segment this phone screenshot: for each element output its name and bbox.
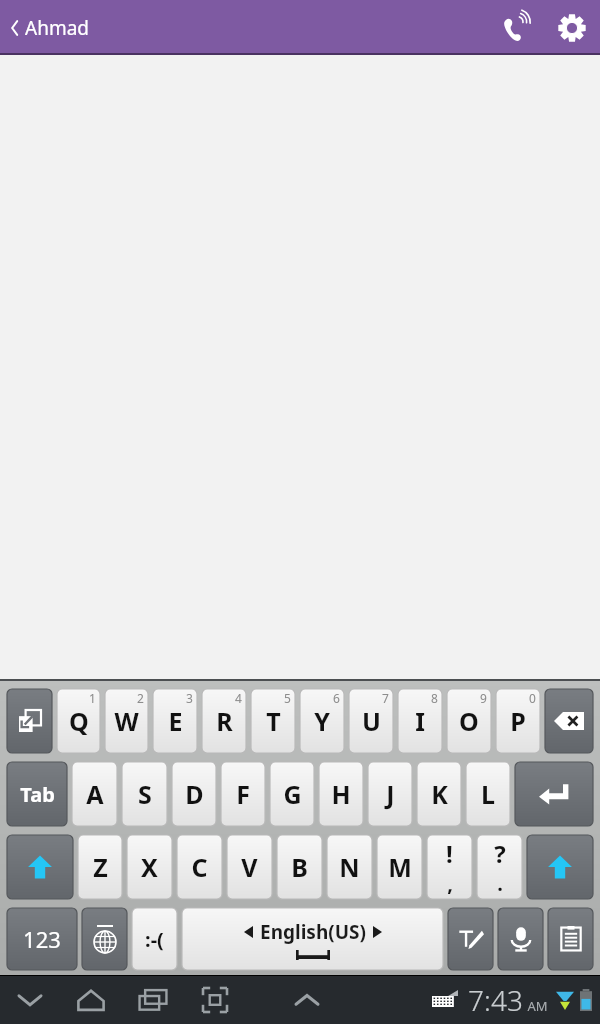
- button[interactable]: W: [105, 689, 148, 753]
- staticText: L: [481, 777, 495, 811]
- button[interactable]: [545, 689, 593, 753]
- button[interactable]: [448, 908, 493, 970]
- staticText: 9: [480, 690, 487, 706]
- button[interactable]: L: [466, 762, 510, 826]
- button[interactable]: [7, 689, 52, 753]
- button[interactable]: E: [153, 689, 197, 753]
- staticText: ?: [494, 837, 506, 870]
- button[interactable]: Z: [78, 835, 122, 899]
- button[interactable]: ?: [477, 835, 522, 899]
- button[interactable]: Expand: [276, 975, 338, 1024]
- staticText: K: [431, 777, 448, 811]
- staticText: 123: [23, 924, 61, 954]
- staticText: S: [138, 777, 152, 811]
- button[interactable]: English(US): [182, 908, 443, 970]
- staticText: E: [168, 704, 183, 738]
- button[interactable]: [82, 908, 127, 970]
- button[interactable]: O: [447, 689, 491, 753]
- button[interactable]: M: [377, 835, 422, 899]
- staticText: 7:43: [468, 981, 523, 1019]
- button[interactable]: [515, 762, 593, 826]
- staticText: 6: [333, 690, 340, 706]
- button[interactable]: Recent apps: [122, 975, 184, 1024]
- staticText: M: [388, 850, 412, 884]
- staticText: F: [236, 777, 250, 811]
- staticText: !: [446, 837, 453, 870]
- button[interactable]: D: [172, 762, 216, 826]
- button[interactable]: [527, 835, 593, 899]
- button[interactable]: U: [349, 689, 393, 753]
- staticText: Y: [314, 704, 330, 738]
- button[interactable]: Free call: [490, 1, 544, 55]
- staticText: R: [216, 704, 233, 738]
- button[interactable]: 123: [7, 908, 77, 970]
- button[interactable]: I: [398, 689, 442, 753]
- button[interactable]: A: [72, 762, 117, 826]
- button[interactable]: :-(: [132, 908, 177, 970]
- staticText: English(US): [260, 919, 366, 945]
- button[interactable]: Tab: [7, 762, 67, 826]
- staticText: AM: [527, 997, 548, 1015]
- staticText: .: [497, 870, 503, 897]
- button[interactable]: [7, 835, 73, 899]
- staticText: Z: [93, 850, 108, 884]
- button[interactable]: R: [202, 689, 246, 753]
- staticText: :-(: [145, 926, 164, 953]
- staticText: A: [86, 777, 104, 811]
- button[interactable]: V: [227, 835, 272, 899]
- staticText: Q: [69, 704, 89, 738]
- staticText: G: [283, 777, 302, 811]
- staticText: T: [266, 704, 281, 738]
- staticText: I: [415, 704, 425, 738]
- staticText: U: [362, 704, 381, 738]
- button[interactable]: S: [122, 762, 167, 826]
- button[interactable]: Home: [60, 975, 122, 1024]
- button[interactable]: K: [417, 762, 461, 826]
- staticText: X: [141, 850, 158, 884]
- button[interactable]: X: [127, 835, 172, 899]
- button[interactable]: F: [221, 762, 265, 826]
- staticText: 3: [186, 690, 193, 706]
- staticText: H: [331, 777, 351, 811]
- button[interactable]: Settings: [544, 0, 600, 55]
- button[interactable]: T: [251, 689, 295, 753]
- button[interactable]: C: [177, 835, 222, 899]
- button[interactable]: !: [427, 835, 472, 899]
- button[interactable]: Ahmad: [6, 9, 93, 47]
- staticText: O: [459, 704, 479, 738]
- button[interactable]: P: [496, 689, 540, 753]
- staticText: ,: [447, 870, 453, 897]
- staticText: P: [510, 704, 526, 738]
- staticText: W: [114, 704, 139, 738]
- staticText: V: [241, 850, 258, 884]
- staticText: N: [339, 850, 360, 884]
- staticText: 7: [382, 690, 389, 706]
- button[interactable]: G: [270, 762, 314, 826]
- button[interactable]: [548, 908, 593, 970]
- staticText: 2: [137, 690, 144, 706]
- button[interactable]: N: [327, 835, 372, 899]
- staticText: 4: [235, 690, 242, 706]
- button[interactable]: H: [319, 762, 363, 826]
- button[interactable]: Screenshot: [184, 975, 246, 1024]
- button[interactable]: Y: [300, 689, 344, 753]
- staticText: 5: [284, 690, 291, 706]
- staticText: D: [185, 777, 204, 811]
- button[interactable]: Hide: [0, 975, 60, 1024]
- staticText: 1: [89, 690, 96, 706]
- staticText: 8: [431, 690, 438, 706]
- staticText: 0: [529, 690, 536, 706]
- staticText: C: [191, 850, 208, 884]
- button[interactable]: [498, 908, 543, 970]
- button[interactable]: B: [277, 835, 322, 899]
- button[interactable]: Q: [57, 689, 100, 753]
- staticText: B: [291, 850, 308, 884]
- staticText: Ahmad: [25, 15, 89, 41]
- staticText: Tab: [20, 781, 55, 808]
- button[interactable]: J: [368, 762, 412, 826]
- staticText: J: [386, 777, 395, 811]
